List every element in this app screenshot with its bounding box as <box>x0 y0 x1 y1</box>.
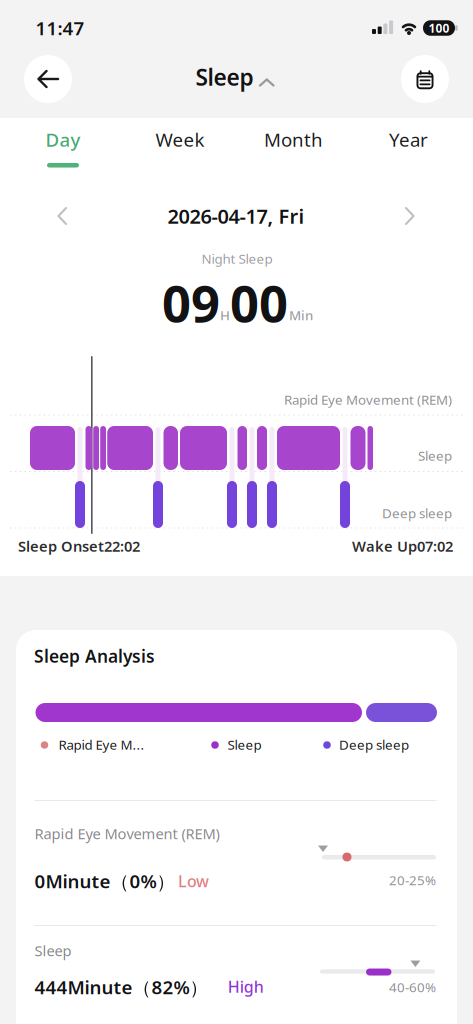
button[interactable]: Week <box>135 119 225 159</box>
staticText: Deep sleep <box>339 736 409 753</box>
staticText: Day <box>45 127 80 152</box>
staticText: Month <box>264 127 323 152</box>
staticText: Sleep <box>34 941 71 960</box>
button[interactable]: Month <box>248 119 338 159</box>
staticText: Low <box>178 870 209 892</box>
button[interactable]: Day <box>23 117 103 171</box>
staticText: Wake Up07:02 <box>352 536 453 556</box>
staticText: Sleep <box>195 62 253 92</box>
staticText: Rapid Eye Movement (REM) <box>284 391 452 408</box>
button[interactable]: Calendar <box>401 55 449 103</box>
staticText: 11:47 <box>35 16 84 40</box>
staticText: 09 <box>162 269 220 336</box>
staticText: 444Minute（82%） <box>34 975 208 999</box>
staticText: High <box>228 976 264 997</box>
staticText: Sleep Onset22:02 <box>18 536 140 556</box>
staticText: Deep sleep <box>382 504 452 522</box>
staticText: 100 <box>428 20 449 36</box>
staticText: Sleep Analysis <box>34 644 155 667</box>
staticText: Year <box>389 127 428 152</box>
staticText: H <box>220 306 230 324</box>
staticText: Sleep <box>418 447 452 464</box>
button[interactable]: Sleep, change metric <box>180 55 296 103</box>
staticText: Rapid Eye M... <box>58 736 144 753</box>
staticText: Sleep <box>227 736 261 753</box>
button[interactable]: Back <box>24 55 72 103</box>
staticText: Rapid Eye Movement (REM) <box>34 824 219 843</box>
staticText: 0Minute（0%） <box>34 869 175 893</box>
button[interactable]: Next day <box>390 196 430 236</box>
staticText: 20-25% <box>389 871 436 889</box>
staticText: 2026-04-17, Fri <box>167 203 304 229</box>
staticText: 00 <box>230 269 288 336</box>
button[interactable]: Previous day <box>42 196 82 236</box>
staticText: Week <box>155 127 204 152</box>
staticText: Min <box>289 306 313 324</box>
button[interactable]: Year <box>363 119 453 159</box>
staticText: Night Sleep <box>201 250 272 267</box>
staticText: 40-60% <box>389 978 436 996</box>
